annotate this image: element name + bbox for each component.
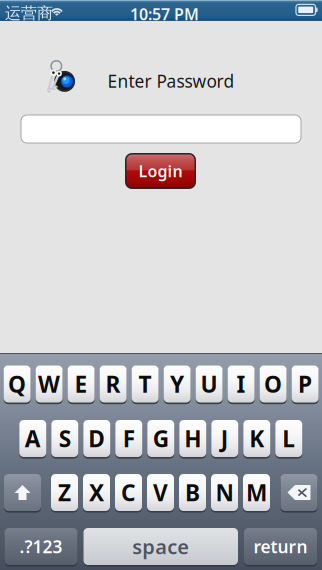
button[interactable]: I bbox=[228, 364, 255, 403]
staticText: U bbox=[201, 369, 218, 399]
button[interactable]: Y bbox=[164, 364, 191, 403]
button[interactable]: Delete bbox=[280, 473, 317, 512]
staticText: Q bbox=[8, 369, 26, 399]
button[interactable]: M bbox=[243, 473, 270, 512]
button[interactable]: T bbox=[132, 364, 159, 403]
staticText: F bbox=[123, 423, 135, 453]
staticText: M bbox=[246, 477, 267, 507]
staticText: space bbox=[132, 533, 189, 560]
staticText: K bbox=[249, 423, 264, 453]
staticText: J bbox=[221, 423, 229, 453]
button[interactable]: K bbox=[243, 419, 270, 458]
staticText: N bbox=[215, 477, 233, 507]
staticText: T bbox=[139, 369, 152, 399]
staticText: I bbox=[237, 369, 246, 399]
staticText: B bbox=[185, 477, 200, 507]
staticText: D bbox=[88, 423, 105, 453]
staticText: 运营商 bbox=[5, 3, 53, 23]
staticText: W bbox=[38, 369, 60, 399]
button[interactable]: C bbox=[115, 473, 142, 512]
staticText: S bbox=[59, 423, 71, 453]
button[interactable]: N bbox=[211, 473, 238, 512]
staticText: L bbox=[282, 423, 295, 453]
button[interactable]: J bbox=[211, 419, 238, 458]
staticText: return bbox=[253, 535, 307, 558]
button[interactable]: W bbox=[36, 364, 63, 403]
button[interactable]: O bbox=[260, 364, 287, 403]
button[interactable]: L bbox=[275, 419, 302, 458]
staticText: E bbox=[75, 369, 88, 399]
staticText: H bbox=[184, 423, 201, 453]
button[interactable]: Shift bbox=[4, 473, 41, 512]
staticText: C bbox=[121, 477, 136, 507]
button[interactable]: Q bbox=[4, 364, 31, 403]
button[interactable]: B bbox=[179, 473, 206, 512]
button[interactable]: D bbox=[83, 419, 110, 458]
button[interactable]: Login bbox=[125, 153, 196, 189]
button[interactable]: U bbox=[196, 364, 223, 403]
button[interactable]: E bbox=[68, 364, 95, 403]
button[interactable]: space bbox=[83, 527, 238, 566]
button[interactable]: R bbox=[100, 364, 127, 403]
staticText: V bbox=[153, 477, 168, 507]
staticText: Z bbox=[58, 477, 71, 507]
staticText: 10:57 PM bbox=[130, 3, 199, 25]
button[interactable]: A bbox=[19, 419, 46, 458]
staticText: Y bbox=[170, 369, 184, 399]
button[interactable]: V bbox=[147, 473, 174, 512]
button[interactable]: Z bbox=[51, 473, 78, 512]
staticText: X bbox=[89, 477, 104, 507]
staticText: G bbox=[153, 423, 169, 453]
staticText: .?123 bbox=[19, 535, 62, 558]
staticText: Enter Password bbox=[107, 69, 234, 92]
button[interactable]: F bbox=[115, 419, 142, 458]
button[interactable]: Return bbox=[244, 527, 317, 566]
button[interactable]: Numbers bbox=[4, 527, 77, 566]
staticText: A bbox=[25, 423, 41, 453]
staticText: P bbox=[298, 369, 312, 399]
button[interactable]: S bbox=[51, 419, 78, 458]
button[interactable]: G bbox=[147, 419, 174, 458]
button[interactable]: X bbox=[83, 473, 110, 512]
button[interactable]: P bbox=[292, 364, 319, 403]
staticText: O bbox=[264, 369, 282, 399]
staticText: R bbox=[106, 369, 121, 399]
staticText: Login bbox=[138, 160, 182, 182]
button[interactable]: H bbox=[179, 419, 206, 458]
